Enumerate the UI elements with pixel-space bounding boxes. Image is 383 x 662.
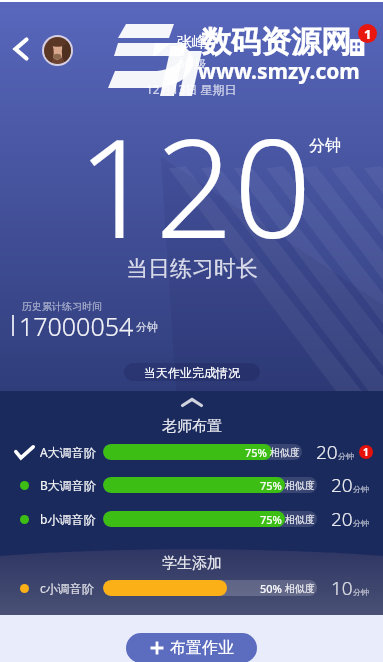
- staticText: 当日练习时长: [126, 255, 258, 283]
- staticText: 相似度: [285, 513, 315, 526]
- staticText: 布置作业: [170, 638, 234, 658]
- staticText: 分钟: [309, 136, 341, 156]
- staticText: 分钟: [353, 484, 369, 494]
- button[interactable]: Profile photo: [42, 35, 73, 66]
- staticText: 1: [364, 25, 372, 43]
- staticText: 张峰: [177, 33, 207, 52]
- button[interactable]: Back: [8, 36, 34, 62]
- staticText: 相似度: [285, 479, 315, 492]
- staticText: 当天作业完成情况: [144, 365, 240, 380]
- button[interactable]: B大调音阶: [0, 470, 383, 500]
- button[interactable]: A大调音阶: [0, 437, 383, 467]
- staticText: 75%: [260, 512, 282, 527]
- staticText: 17000054: [19, 309, 134, 343]
- staticText: 分钟: [353, 518, 369, 528]
- staticText: 120: [77, 92, 312, 279]
- button[interactable]: 布置作业: [126, 633, 257, 662]
- staticText: 10: [331, 575, 353, 601]
- staticText: 相似度: [285, 582, 315, 595]
- button[interactable]: b小调音阶: [0, 504, 383, 534]
- button[interactable]: Collapse: [0, 391, 383, 413]
- staticText: 12月13日 星期日: [146, 81, 237, 97]
- staticText: 分钟: [353, 587, 369, 597]
- staticText: 分钟: [136, 320, 158, 334]
- staticText: B大调音阶: [40, 477, 103, 493]
- staticText: 学生添加: [162, 554, 222, 573]
- staticText: 3年级: [178, 56, 207, 71]
- staticText: b小调音阶: [40, 511, 103, 527]
- staticText: 分钟: [338, 451, 354, 461]
- staticText: c小调音阶: [40, 580, 103, 596]
- button[interactable]: c小调音阶: [0, 573, 383, 603]
- staticText: 数码资源网: [201, 23, 351, 61]
- staticText: 历史累计练习时间: [22, 300, 102, 313]
- staticText: 20: [331, 506, 353, 532]
- staticText: 相似度: [270, 446, 300, 459]
- staticText: www.smzy.com: [198, 57, 360, 86]
- staticText: 75%: [260, 478, 282, 493]
- button[interactable]: 当天作业完成情况: [124, 363, 260, 381]
- staticText: 75%: [245, 445, 267, 460]
- staticText: 50%: [260, 581, 282, 596]
- staticText: 20: [331, 472, 353, 498]
- staticText: 20: [316, 439, 338, 465]
- staticText: 1: [363, 445, 369, 459]
- staticText: 老师布置: [162, 417, 222, 436]
- staticText: A大调音阶: [40, 444, 103, 460]
